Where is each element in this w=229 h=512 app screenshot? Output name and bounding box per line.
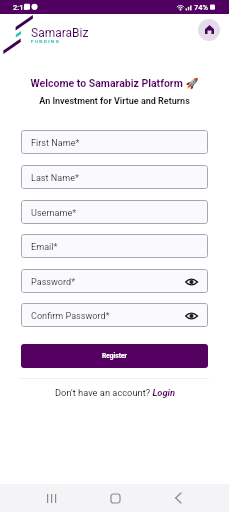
staticText: FUNDING xyxy=(31,39,61,44)
button[interactable]: Home xyxy=(198,19,220,41)
staticText: Password* xyxy=(31,277,76,288)
button[interactable]: Username* xyxy=(21,200,208,224)
staticText: Register xyxy=(102,352,127,360)
button[interactable]: Don't have an account? Login xyxy=(55,387,175,398)
staticText: Confirm Password* xyxy=(31,311,110,322)
staticText: 74% xyxy=(194,3,209,12)
other: Show password xyxy=(185,278,198,286)
staticText: 2:16 xyxy=(13,3,28,12)
staticText: First Name* xyxy=(31,138,80,149)
button[interactable]: Recents xyxy=(37,484,65,512)
button[interactable]: Back xyxy=(164,484,192,512)
button[interactable]: Home xyxy=(101,484,129,512)
other: Show password xyxy=(185,312,198,320)
button[interactable]: Register xyxy=(21,344,208,368)
staticText: Username* xyxy=(31,208,77,219)
button[interactable]: Email* xyxy=(21,234,208,258)
button[interactable]: Last Name* xyxy=(21,165,208,189)
staticText: Email* xyxy=(31,242,58,253)
staticText: Last Name* xyxy=(31,173,79,184)
staticText: SamaraBiz xyxy=(31,26,89,40)
staticText: An Investment for Virtue and Returns xyxy=(0,96,229,107)
button[interactable]: First Name* xyxy=(21,130,208,154)
button[interactable]: Password* xyxy=(21,269,208,293)
staticText: Welcome to Samarabiz Platform 🚀 xyxy=(0,77,229,89)
button[interactable]: Confirm Password* xyxy=(21,303,208,327)
